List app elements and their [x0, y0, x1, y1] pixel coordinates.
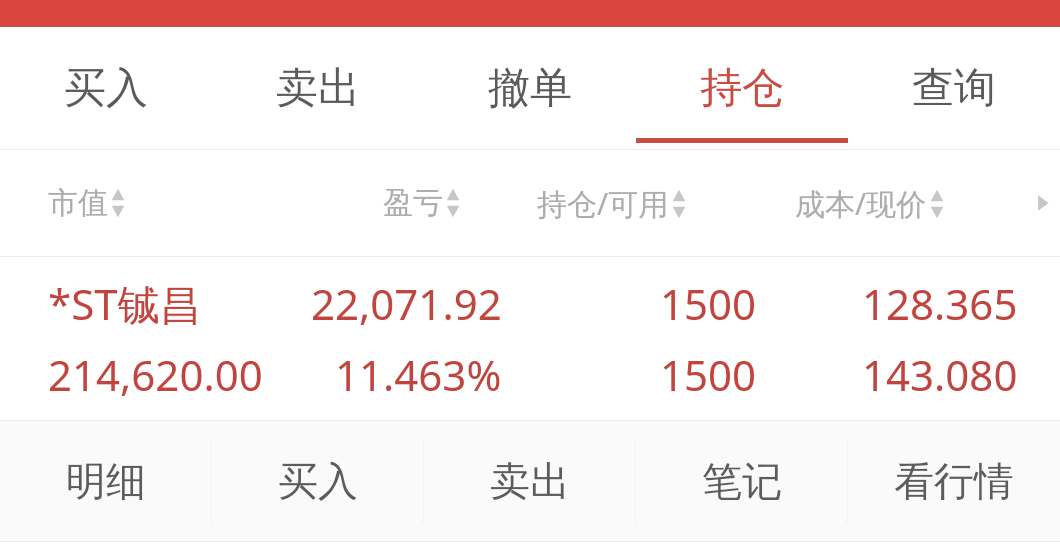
button[interactable]: 持仓/可用	[537, 183, 687, 224]
staticText: 明细	[66, 456, 146, 506]
button[interactable]: 盈亏	[383, 184, 461, 222]
staticText: 成本/现价	[795, 183, 927, 224]
staticText: 撤单	[488, 62, 572, 115]
button[interactable]: 撤单	[424, 27, 636, 149]
staticText: 卖出	[276, 62, 360, 115]
button[interactable]: 持仓	[636, 27, 848, 149]
button[interactable]: 成本/现价	[795, 183, 945, 224]
staticText: 买入	[278, 456, 358, 506]
button[interactable]: 市值	[48, 184, 126, 222]
staticText: 卖出	[490, 456, 570, 506]
staticText: 214,620.00	[48, 346, 263, 403]
staticText: 盈亏	[383, 184, 443, 222]
button[interactable]: 买入	[212, 420, 424, 542]
button[interactable]: 笔记	[636, 420, 848, 542]
button[interactable]: 明细	[0, 420, 212, 542]
staticText: 查询	[912, 62, 996, 115]
button[interactable]: 看行情	[848, 420, 1060, 542]
staticText: 11.463%	[335, 346, 502, 403]
staticText: 市值	[48, 184, 108, 222]
staticText: 1500	[660, 275, 757, 332]
button[interactable]: 卖出	[212, 27, 424, 149]
button[interactable]: 查询	[848, 27, 1060, 149]
staticText: 买入	[64, 62, 148, 115]
staticText: 笔记	[702, 456, 782, 506]
button[interactable]: 买入	[0, 27, 212, 149]
staticText: 持仓	[700, 62, 784, 115]
button[interactable]: *ST铖昌	[0, 257, 1060, 420]
staticText: 128.365	[862, 275, 1018, 332]
staticText: 看行情	[894, 456, 1014, 506]
staticText: 1500	[660, 346, 757, 403]
staticText: 22,071.92	[311, 275, 502, 332]
staticText: *ST铖昌	[48, 275, 202, 332]
staticText: 143.080	[862, 346, 1018, 403]
staticText: 持仓/可用	[537, 183, 669, 224]
button[interactable]: 卖出	[424, 420, 636, 542]
